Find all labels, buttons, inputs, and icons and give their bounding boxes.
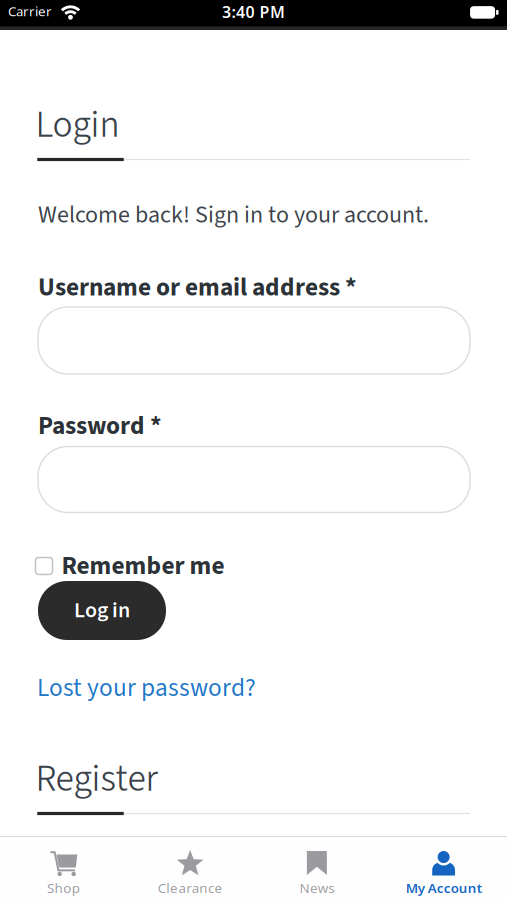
staticText: Lost your password? <box>37 670 256 706</box>
staticText: My Account <box>406 879 482 897</box>
button[interactable]: My Account <box>380 836 507 900</box>
staticText: 3:40 PM <box>222 1 285 22</box>
button[interactable]: Username or email address <box>38 307 470 374</box>
staticText: Clearance <box>158 879 222 897</box>
button[interactable]: Clearance <box>127 836 254 900</box>
staticText: News <box>299 879 334 897</box>
staticText: Log in <box>74 595 130 626</box>
button[interactable]: Lost your password? <box>37 670 469 706</box>
staticText: Register <box>35 752 157 806</box>
button[interactable]: Remember me <box>35 548 467 584</box>
staticText: Welcome back! Sign in to your account. <box>38 198 429 232</box>
button[interactable]: Shop <box>0 836 127 900</box>
staticText: Password * <box>38 408 162 444</box>
button[interactable]: Log in <box>38 581 166 640</box>
button[interactable]: Password <box>38 446 470 512</box>
staticText: Carrier <box>8 2 52 20</box>
staticText: Shop <box>47 879 80 897</box>
staticText: Login <box>35 98 119 152</box>
button[interactable]: News <box>253 836 380 900</box>
staticText: Username or email address * <box>38 269 357 306</box>
staticText: Remember me <box>61 548 224 584</box>
